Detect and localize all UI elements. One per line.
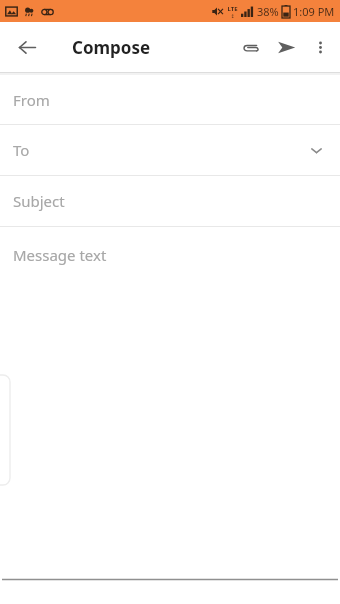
button[interactable]: Back [9,29,45,65]
button[interactable]: Attach file [232,29,268,65]
staticText: 1:09 PM [293,4,335,19]
staticText: LTE [227,5,238,13]
staticText: To [13,140,30,160]
button[interactable]: To [0,125,340,175]
button[interactable]: From [0,75,340,124]
staticText: ↕ [230,13,235,19]
button[interactable]: Send [268,29,304,65]
button[interactable]: More options [304,31,336,63]
button[interactable]: Show CC and BCC [304,138,328,162]
button[interactable]: Message text [0,227,340,283]
staticText: Subject [13,191,65,211]
staticText: 38% [257,4,279,19]
staticText: From [13,90,50,110]
button[interactable]: Subject [0,176,340,226]
staticText: Message text [13,245,107,265]
staticText: Compose [72,36,151,59]
